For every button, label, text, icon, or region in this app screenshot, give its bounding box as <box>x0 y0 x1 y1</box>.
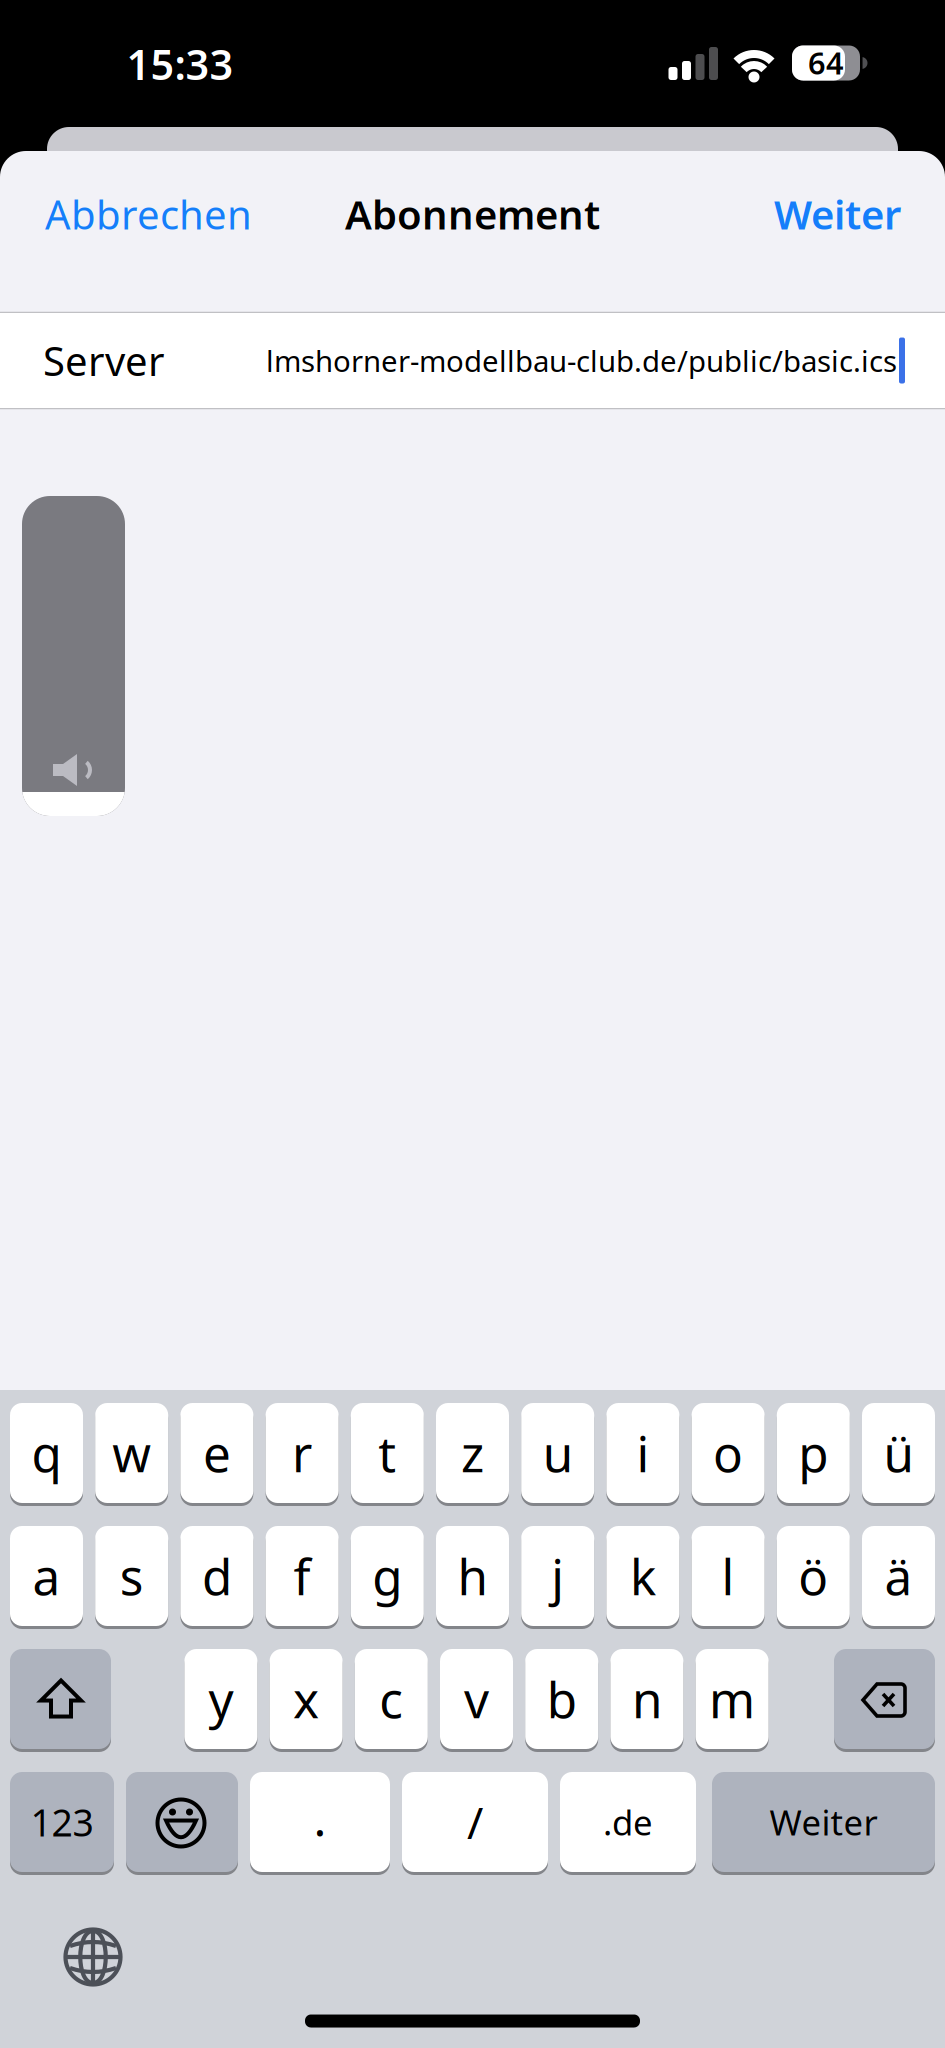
button[interactable]: / <box>402 1772 548 1875</box>
button[interactable]: y <box>184 1649 257 1752</box>
staticText: p <box>798 1420 828 1486</box>
button[interactable]: q <box>10 1403 83 1506</box>
staticText: l <box>722 1543 735 1609</box>
button[interactable]: . <box>250 1772 390 1875</box>
button[interactable]: s <box>95 1526 168 1629</box>
button[interactable]: c <box>355 1649 428 1752</box>
staticText: v <box>464 1666 489 1732</box>
staticText: k <box>630 1543 656 1609</box>
staticText: f <box>294 1543 311 1609</box>
button[interactable]: t <box>351 1403 424 1506</box>
staticText: .de <box>603 1799 653 1845</box>
button[interactable]: x <box>270 1649 343 1752</box>
staticText: z <box>461 1420 484 1486</box>
staticText: d <box>202 1543 232 1609</box>
button[interactable]: n <box>610 1649 683 1752</box>
button[interactable]: Shift <box>10 1649 111 1752</box>
staticText: n <box>632 1666 662 1732</box>
button[interactable]: 123 <box>10 1772 114 1875</box>
staticText: t <box>378 1420 396 1486</box>
button[interactable]: Weiter <box>774 187 901 240</box>
staticText: / <box>467 1793 483 1851</box>
staticText: Abonnement <box>345 187 600 240</box>
button[interactable]: a <box>10 1526 83 1629</box>
staticText: ü <box>883 1420 913 1486</box>
staticText: j <box>551 1543 564 1609</box>
button[interactable]: g <box>351 1526 424 1629</box>
staticText: c <box>379 1666 403 1732</box>
staticText: Weiter <box>769 1799 877 1845</box>
staticText: Server <box>43 334 165 387</box>
staticText: u <box>543 1420 573 1486</box>
button[interactable]: Server <box>0 313 945 408</box>
staticText: r <box>292 1420 312 1486</box>
staticText: o <box>713 1420 743 1486</box>
staticText: Weiter <box>774 187 901 240</box>
staticText: q <box>31 1420 61 1486</box>
staticText: . <box>313 1786 326 1850</box>
button[interactable]: Next keyboard <box>58 1922 128 1992</box>
button[interactable]: r <box>266 1403 339 1506</box>
button[interactable]: v <box>440 1649 513 1752</box>
button[interactable]: b <box>525 1649 598 1752</box>
button[interactable]: l <box>692 1526 765 1629</box>
staticText: 64 <box>808 42 844 83</box>
staticText: x <box>293 1666 319 1732</box>
button[interactable]: h <box>436 1526 509 1629</box>
button[interactable]: p <box>777 1403 850 1506</box>
staticText: y <box>208 1666 233 1732</box>
button[interactable]: ä <box>862 1526 935 1629</box>
button[interactable]: z <box>436 1403 509 1506</box>
staticText: m <box>709 1666 755 1732</box>
staticText: i <box>636 1420 649 1486</box>
button[interactable]: Delete <box>834 1649 935 1752</box>
staticText: h <box>457 1543 487 1609</box>
button[interactable]: u <box>521 1403 594 1506</box>
staticText: g <box>372 1543 402 1609</box>
staticText: ä <box>884 1543 912 1609</box>
button[interactable]: Emoji <box>126 1772 238 1875</box>
button[interactable]: Abbrechen <box>45 187 252 240</box>
staticText: ö <box>798 1543 828 1609</box>
staticText: lmshorner-modellbau-club.de/public/basic… <box>266 341 897 380</box>
staticText: s <box>120 1543 144 1609</box>
staticText: 123 <box>30 1797 93 1847</box>
button[interactable]: w <box>95 1403 168 1506</box>
button[interactable]: Weiter <box>712 1772 935 1875</box>
button[interactable]: o <box>692 1403 765 1506</box>
button[interactable]: d <box>180 1526 253 1629</box>
button[interactable]: i <box>606 1403 679 1506</box>
staticText: Abbrechen <box>45 187 252 240</box>
button[interactable]: f <box>266 1526 339 1629</box>
staticText: b <box>547 1666 577 1732</box>
staticText: e <box>203 1420 231 1486</box>
button[interactable]: e <box>180 1403 253 1506</box>
button[interactable]: .de <box>560 1772 696 1875</box>
button[interactable]: m <box>696 1649 769 1752</box>
staticText: 15:33 <box>126 37 233 91</box>
button[interactable]: k <box>606 1526 679 1629</box>
staticText: w <box>112 1420 151 1486</box>
staticText: a <box>32 1543 60 1609</box>
button[interactable]: ü <box>862 1403 935 1506</box>
button[interactable]: j <box>521 1526 594 1629</box>
button[interactable]: ö <box>777 1526 850 1629</box>
